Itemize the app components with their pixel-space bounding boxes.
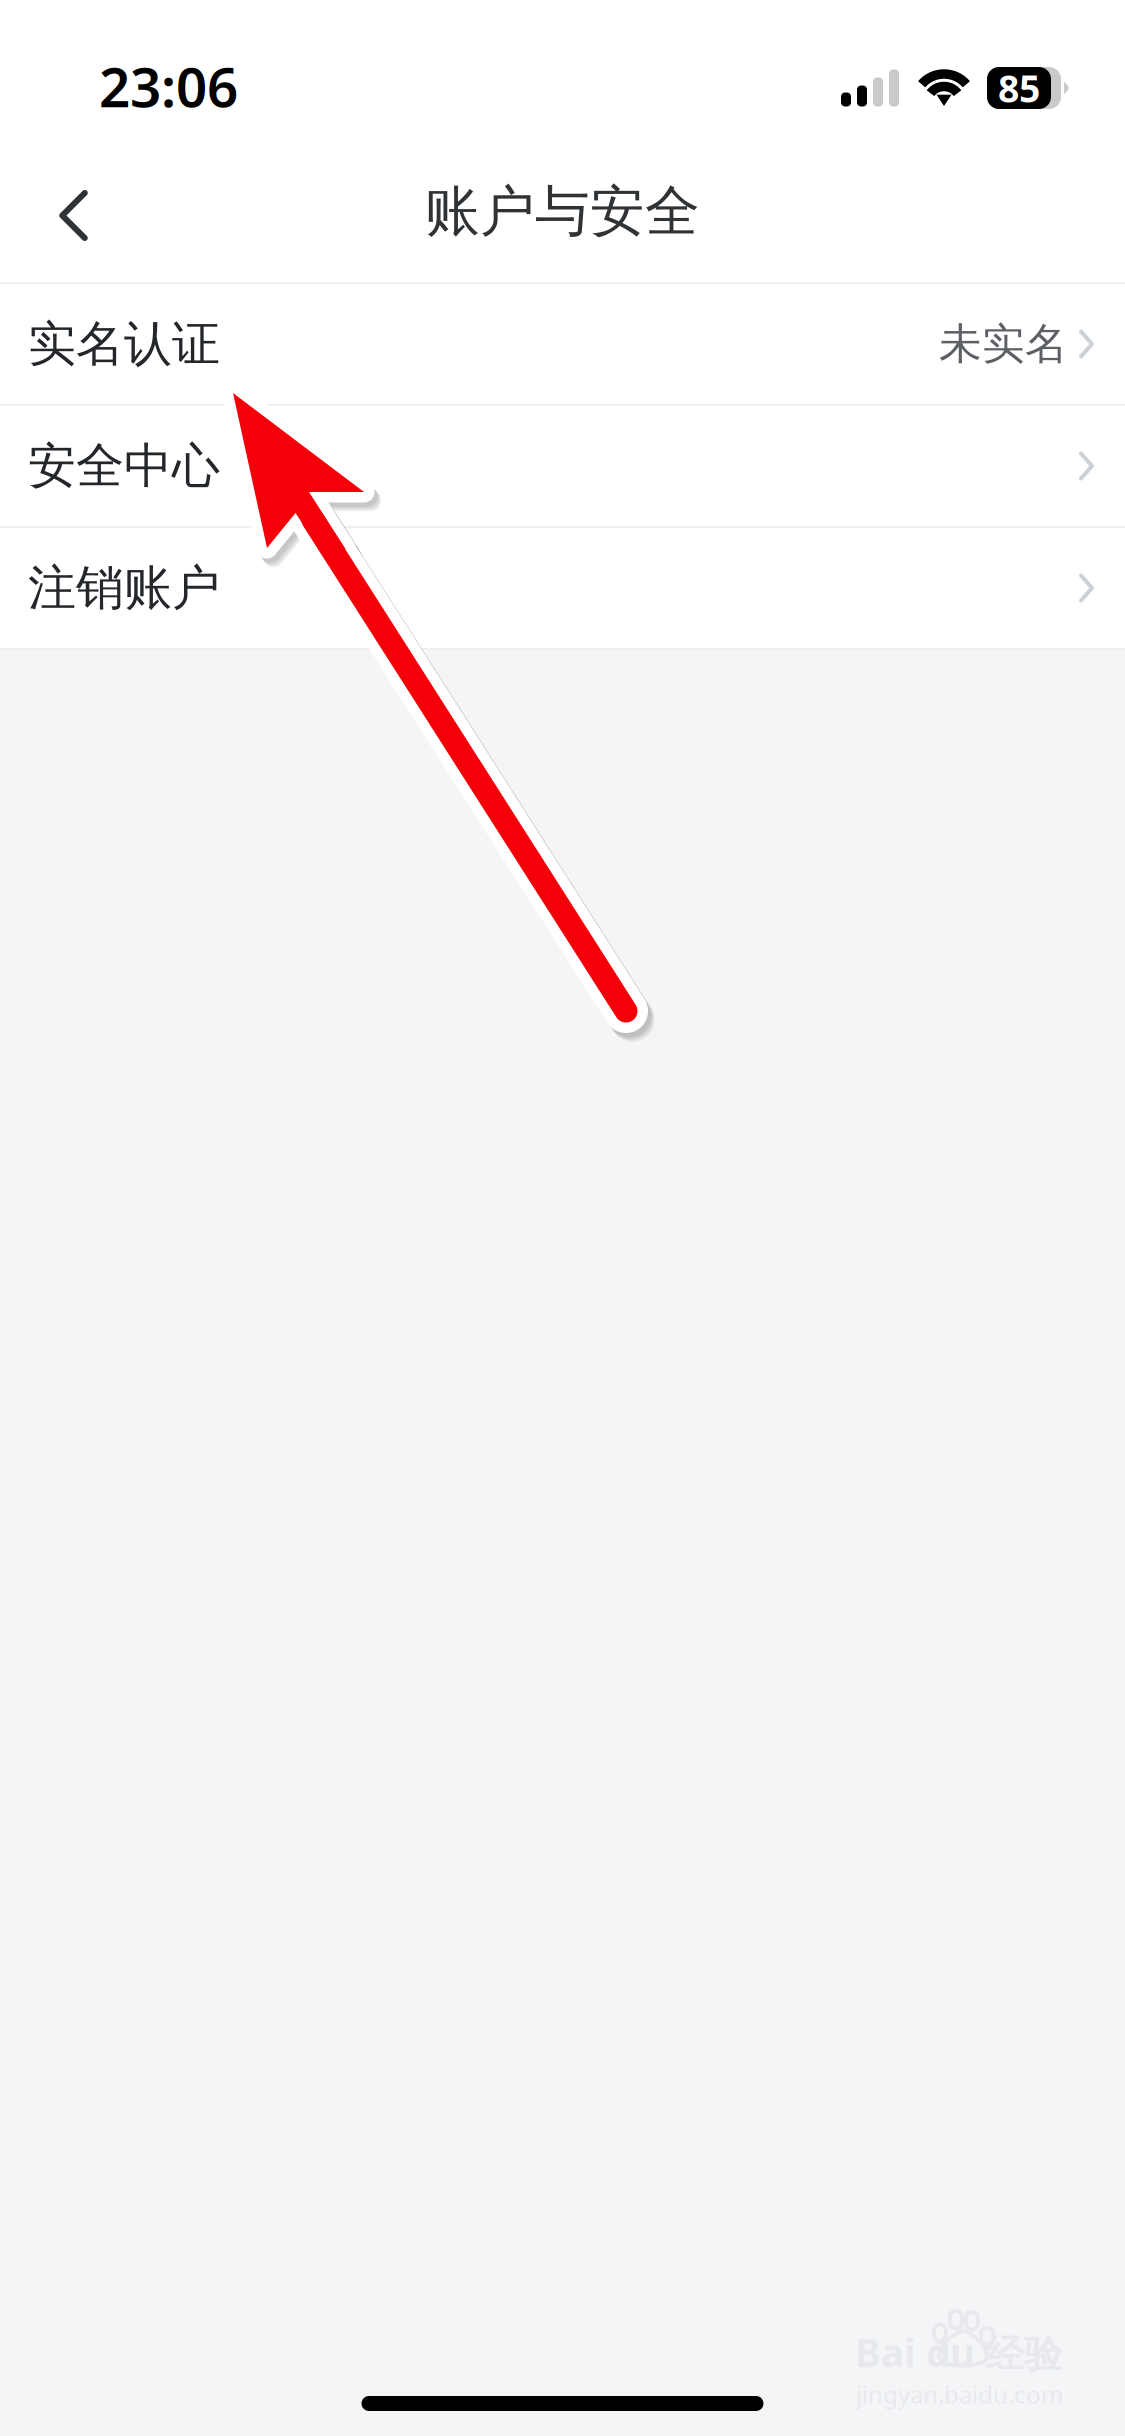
staticText: 23:06 [99,50,238,122]
staticText: Bai du 经验 [855,2327,1063,2378]
staticText: 安全中心 [28,436,220,495]
staticText: 未实名 [939,318,1068,370]
staticText: 注销账户 [28,558,220,617]
staticText: jingyan.baidu.com [856,2378,1063,2410]
button[interactable]: 实名认证 [0,284,1125,404]
staticText: 实名认证 [28,314,220,373]
button[interactable]: 安全中心 [0,406,1125,526]
staticText: 85 [998,63,1040,113]
staticText: 账户与安全 [425,178,700,245]
button[interactable]: 返回 [26,168,121,263]
button[interactable]: 注销账户 [0,528,1125,648]
